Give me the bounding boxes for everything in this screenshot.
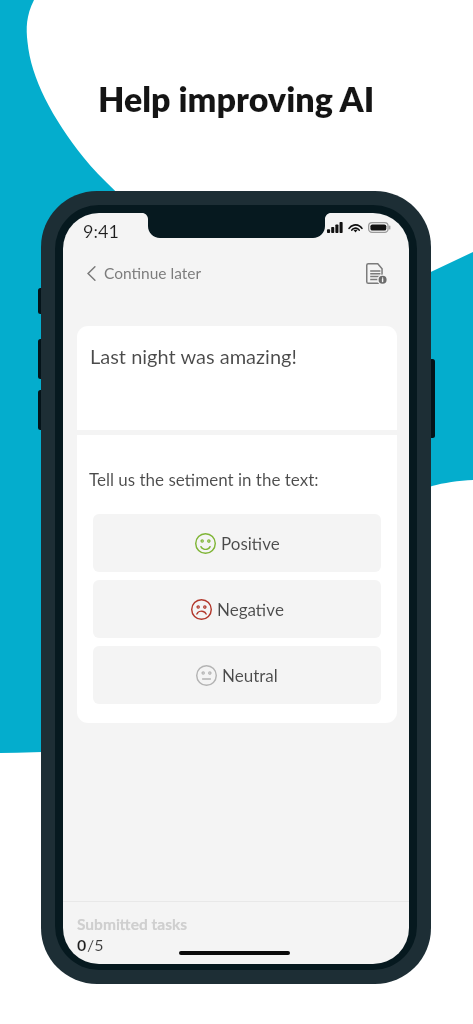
staticText: Positive <box>221 533 280 553</box>
button[interactable]: Task details <box>362 259 391 288</box>
staticText: Tell us the setiment in the text: <box>89 469 319 489</box>
staticText: Neutral <box>222 665 278 685</box>
button[interactable]: Positive <box>93 514 381 572</box>
staticText: /5 <box>87 935 104 954</box>
staticText: 0 <box>77 935 87 954</box>
button[interactable]: Neutral <box>93 646 381 704</box>
staticText: Continue later <box>104 264 202 283</box>
staticText: Last night was amazing! <box>90 344 297 368</box>
staticText: Submitted tasks <box>77 915 188 934</box>
button[interactable]: Negative <box>93 580 381 638</box>
staticText: 9:41 <box>83 220 119 242</box>
button[interactable]: Continue later <box>82 258 207 289</box>
staticText: Help improving AI <box>98 78 375 119</box>
staticText: Negative <box>217 599 284 619</box>
